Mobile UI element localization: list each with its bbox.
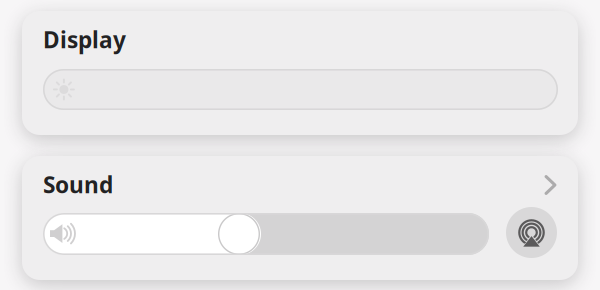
- staticText: Sound: [43, 169, 113, 200]
- button[interactable]: [43, 69, 558, 110]
- button[interactable]: More sound settings: [534, 167, 566, 203]
- button[interactable]: [43, 213, 489, 255]
- button[interactable]: AirPlay: [506, 207, 557, 258]
- staticText: Display: [43, 24, 126, 55]
